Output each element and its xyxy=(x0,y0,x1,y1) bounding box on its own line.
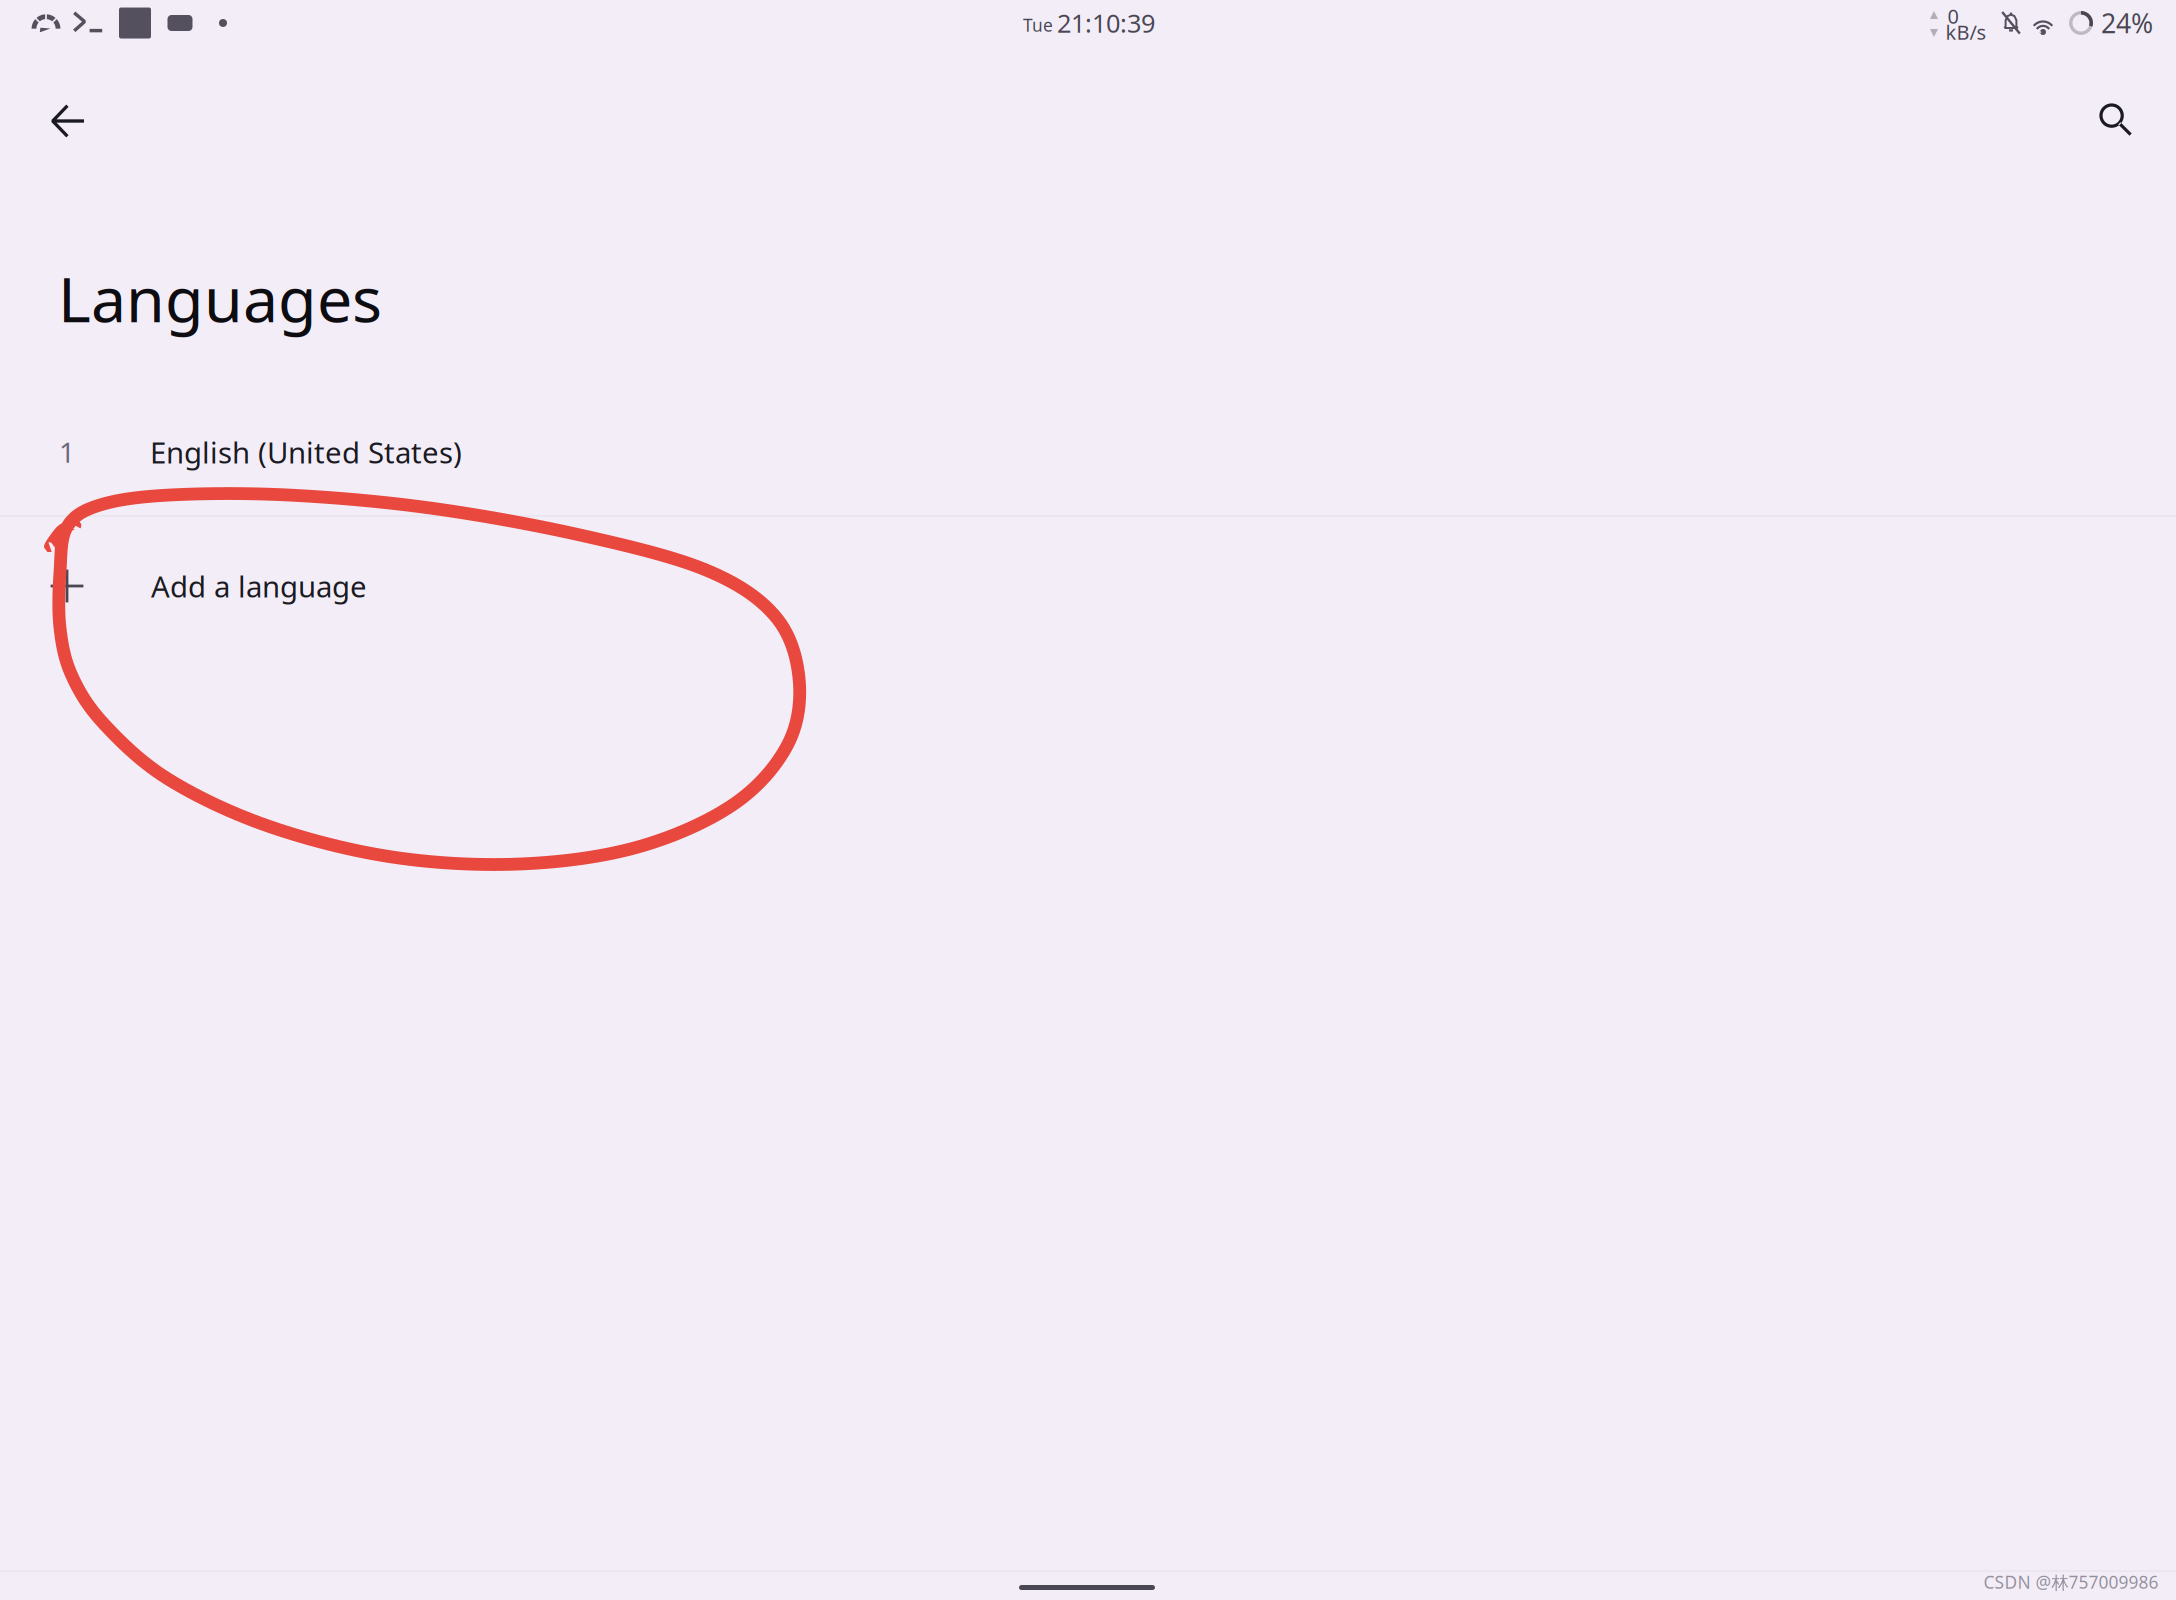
button[interactable]: Search xyxy=(2076,80,2156,160)
staticText: 0 xyxy=(1947,3,1958,29)
staticText: 1 xyxy=(59,433,75,471)
staticText: CSDN @林757009986 xyxy=(1983,1570,2158,1593)
staticText: English (United States) xyxy=(150,432,462,471)
staticText: kB/s xyxy=(1945,19,1986,45)
button[interactable]: 1 xyxy=(0,406,2176,498)
button[interactable]: Back xyxy=(28,81,108,161)
staticText: 21:10:39 xyxy=(1057,6,1155,40)
button[interactable]: Add a language xyxy=(0,521,2176,651)
staticText: 24% xyxy=(2101,5,2153,41)
staticText: Add a language xyxy=(151,566,367,605)
staticText: Languages xyxy=(58,256,382,340)
staticText: Tue xyxy=(1023,13,1053,36)
